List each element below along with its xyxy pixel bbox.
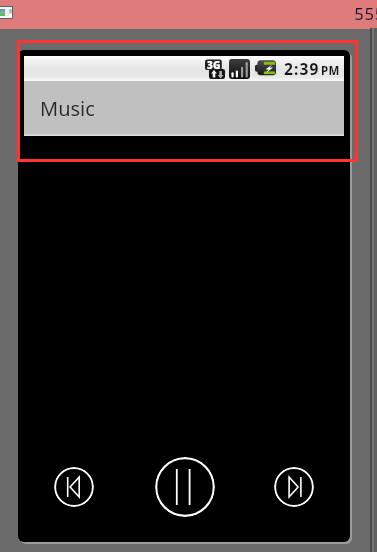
button[interactable]: Next track bbox=[274, 467, 314, 507]
staticText: 2:39 bbox=[284, 58, 320, 79]
button[interactable]: Music bbox=[24, 81, 344, 136]
staticText: 5555 bbox=[354, 2, 377, 25]
button[interactable]: Pause bbox=[155, 457, 215, 517]
staticText: PM bbox=[321, 63, 340, 79]
staticText: 3G bbox=[207, 58, 221, 72]
staticText: Music bbox=[40, 95, 95, 122]
button[interactable]: Previous track bbox=[54, 467, 94, 507]
